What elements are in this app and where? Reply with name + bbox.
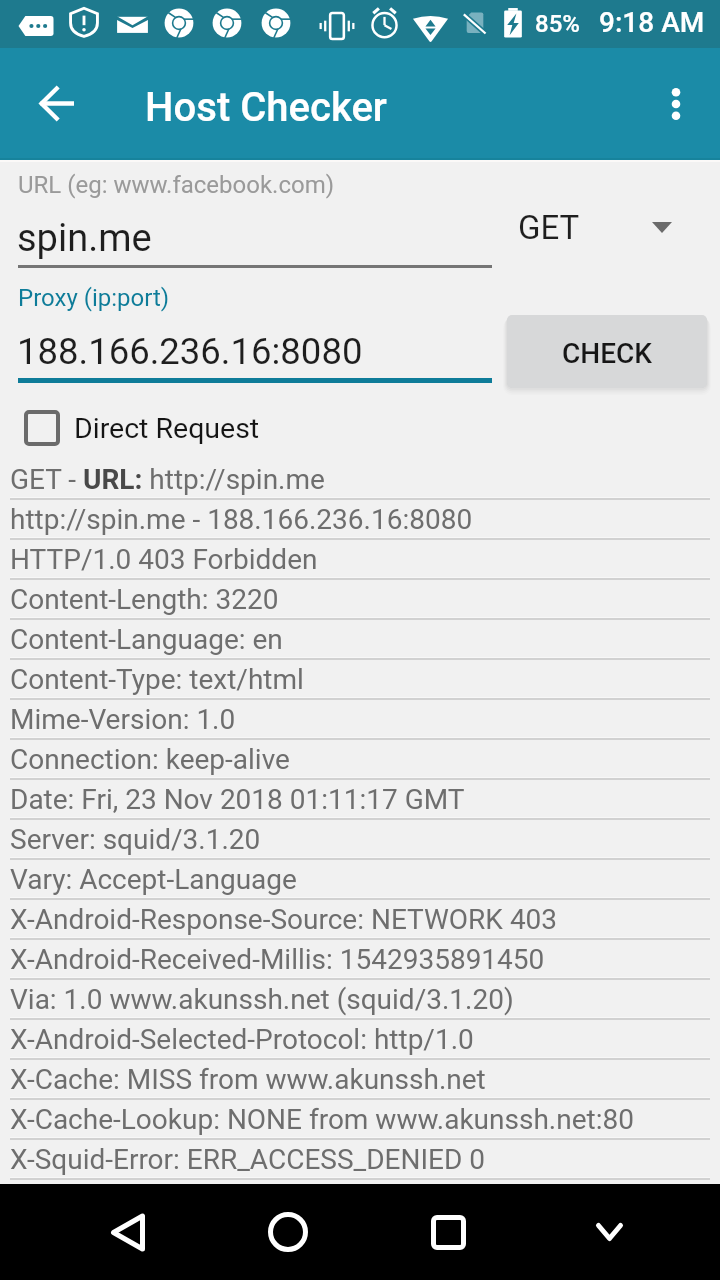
button[interactable]: Content-Type: text/html (0, 660, 720, 700)
button[interactable]: X-Cache-Lookup: NONE from www.akunssh.ne… (0, 1100, 720, 1140)
button[interactable]: Back (80, 1184, 176, 1280)
button[interactable]: Home (240, 1184, 336, 1280)
button[interactable]: X-Android-Received-Millis: 1542935891450 (0, 940, 720, 980)
button[interactable]: Server: squid/3.1.20 (0, 820, 720, 860)
button[interactable]: Recent apps (400, 1184, 496, 1280)
button[interactable]: GET (506, 199, 696, 255)
button[interactable]: http://spin.me - 188.166.236.16:8080 (0, 500, 720, 540)
button[interactable]: Navigate up (15, 62, 98, 145)
button[interactable]: HTTP/1.0 403 Forbidden (0, 540, 720, 580)
button[interactable]: GET - URL: http://spin.me (0, 460, 720, 500)
staticText: spin.me (17, 216, 152, 261)
staticText: X-Cache: MISS from www.akunssh.net (10, 1063, 486, 1096)
button[interactable]: More options (634, 62, 717, 145)
staticText: GET - URL: http://spin.me (10, 463, 325, 496)
staticText: X-Android-Selected-Protocol: http/1.0 (10, 1023, 474, 1056)
button[interactable]: Vary: Accept-Language (0, 860, 720, 900)
button[interactable]: Via: 1.0 www.akunssh.net (squid/3.1.20) (0, 980, 720, 1020)
staticText: Host Checker (145, 84, 387, 131)
button[interactable]: Mime-Version: 1.0 (0, 700, 720, 740)
staticText: Connection: keep-alive (10, 743, 290, 776)
staticText: 85% (535, 10, 580, 38)
staticText: Content-Length: 3220 (10, 583, 279, 616)
staticText: Vary: Accept-Language (10, 863, 297, 896)
button[interactable]: X-Android-Response-Source: NETWORK 403 (0, 900, 720, 940)
staticText: 9:18 AM (599, 6, 705, 39)
staticText: Content-Type: text/html (10, 663, 304, 696)
staticText: Date: Fri, 23 Nov 2018 01:11:17 GMT (10, 783, 465, 816)
button[interactable]: X-Squid-Error: ERR_ACCESS_DENIED 0 (0, 1140, 720, 1180)
staticText: Mime-Version: 1.0 (10, 703, 236, 736)
button[interactable]: Hide keyboard (561, 1184, 657, 1280)
staticText: HTTP/1.0 403 Forbidden (10, 543, 318, 576)
staticText: X-Android-Received-Millis: 1542935891450 (10, 943, 545, 976)
staticText: Content-Language: en (10, 623, 283, 656)
button[interactable]: X-Cache: MISS from www.akunssh.net (0, 1060, 720, 1100)
staticText: URL (eg: www.facebook.com) (18, 171, 335, 199)
staticText: X-Cache-Lookup: NONE from www.akunssh.ne… (10, 1103, 634, 1136)
button[interactable]: X-Android-Selected-Protocol: http/1.0 (0, 1020, 720, 1060)
button[interactable]: Content-Length: 3220 (0, 580, 720, 620)
button[interactable]: CHECK (507, 315, 707, 388)
button[interactable]: Date: Fri, 23 Nov 2018 01:11:17 GMT (0, 780, 720, 820)
staticText: GET (518, 208, 580, 247)
staticText: X-Android-Response-Source: NETWORK 403 (10, 903, 558, 936)
button[interactable]: Direct Request (0, 401, 300, 455)
staticText: Server: squid/3.1.20 (10, 823, 261, 856)
button[interactable]: Content-Language: en (0, 620, 720, 660)
button[interactable]: Connection: keep-alive (0, 740, 720, 780)
staticText: http://spin.me - 188.166.236.16:8080 (10, 503, 473, 536)
staticText: CHECK (562, 337, 652, 370)
staticText: Proxy (ip:port) (18, 284, 170, 312)
staticText: Direct Request (74, 412, 260, 445)
staticText: Via: 1.0 www.akunssh.net (squid/3.1.20) (10, 983, 514, 1016)
staticText: X-Squid-Error: ERR_ACCESS_DENIED 0 (10, 1143, 486, 1176)
staticText: 188.166.236.16:8080 (17, 330, 363, 373)
